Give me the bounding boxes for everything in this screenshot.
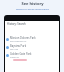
staticText: Revisit or avoid some places xyxy=(16,7,49,10)
staticText: History: Search xyxy=(7,22,26,26)
staticText: Key Ave xyxy=(10,48,18,51)
staticText: 650 Guerrero St xyxy=(10,40,27,43)
button[interactable]: Bayview Park xyxy=(5,43,59,51)
staticText: Mission Dolores Park xyxy=(10,36,36,40)
staticText: Bayview Park xyxy=(10,44,27,48)
staticText: Fulton St xyxy=(10,56,20,59)
staticText: See history xyxy=(21,1,44,6)
button[interactable]: Golden Gate Park xyxy=(5,51,59,59)
button[interactable]: Mission Dolores Park xyxy=(5,35,59,43)
staticText: Golden Gate Park xyxy=(10,52,32,56)
